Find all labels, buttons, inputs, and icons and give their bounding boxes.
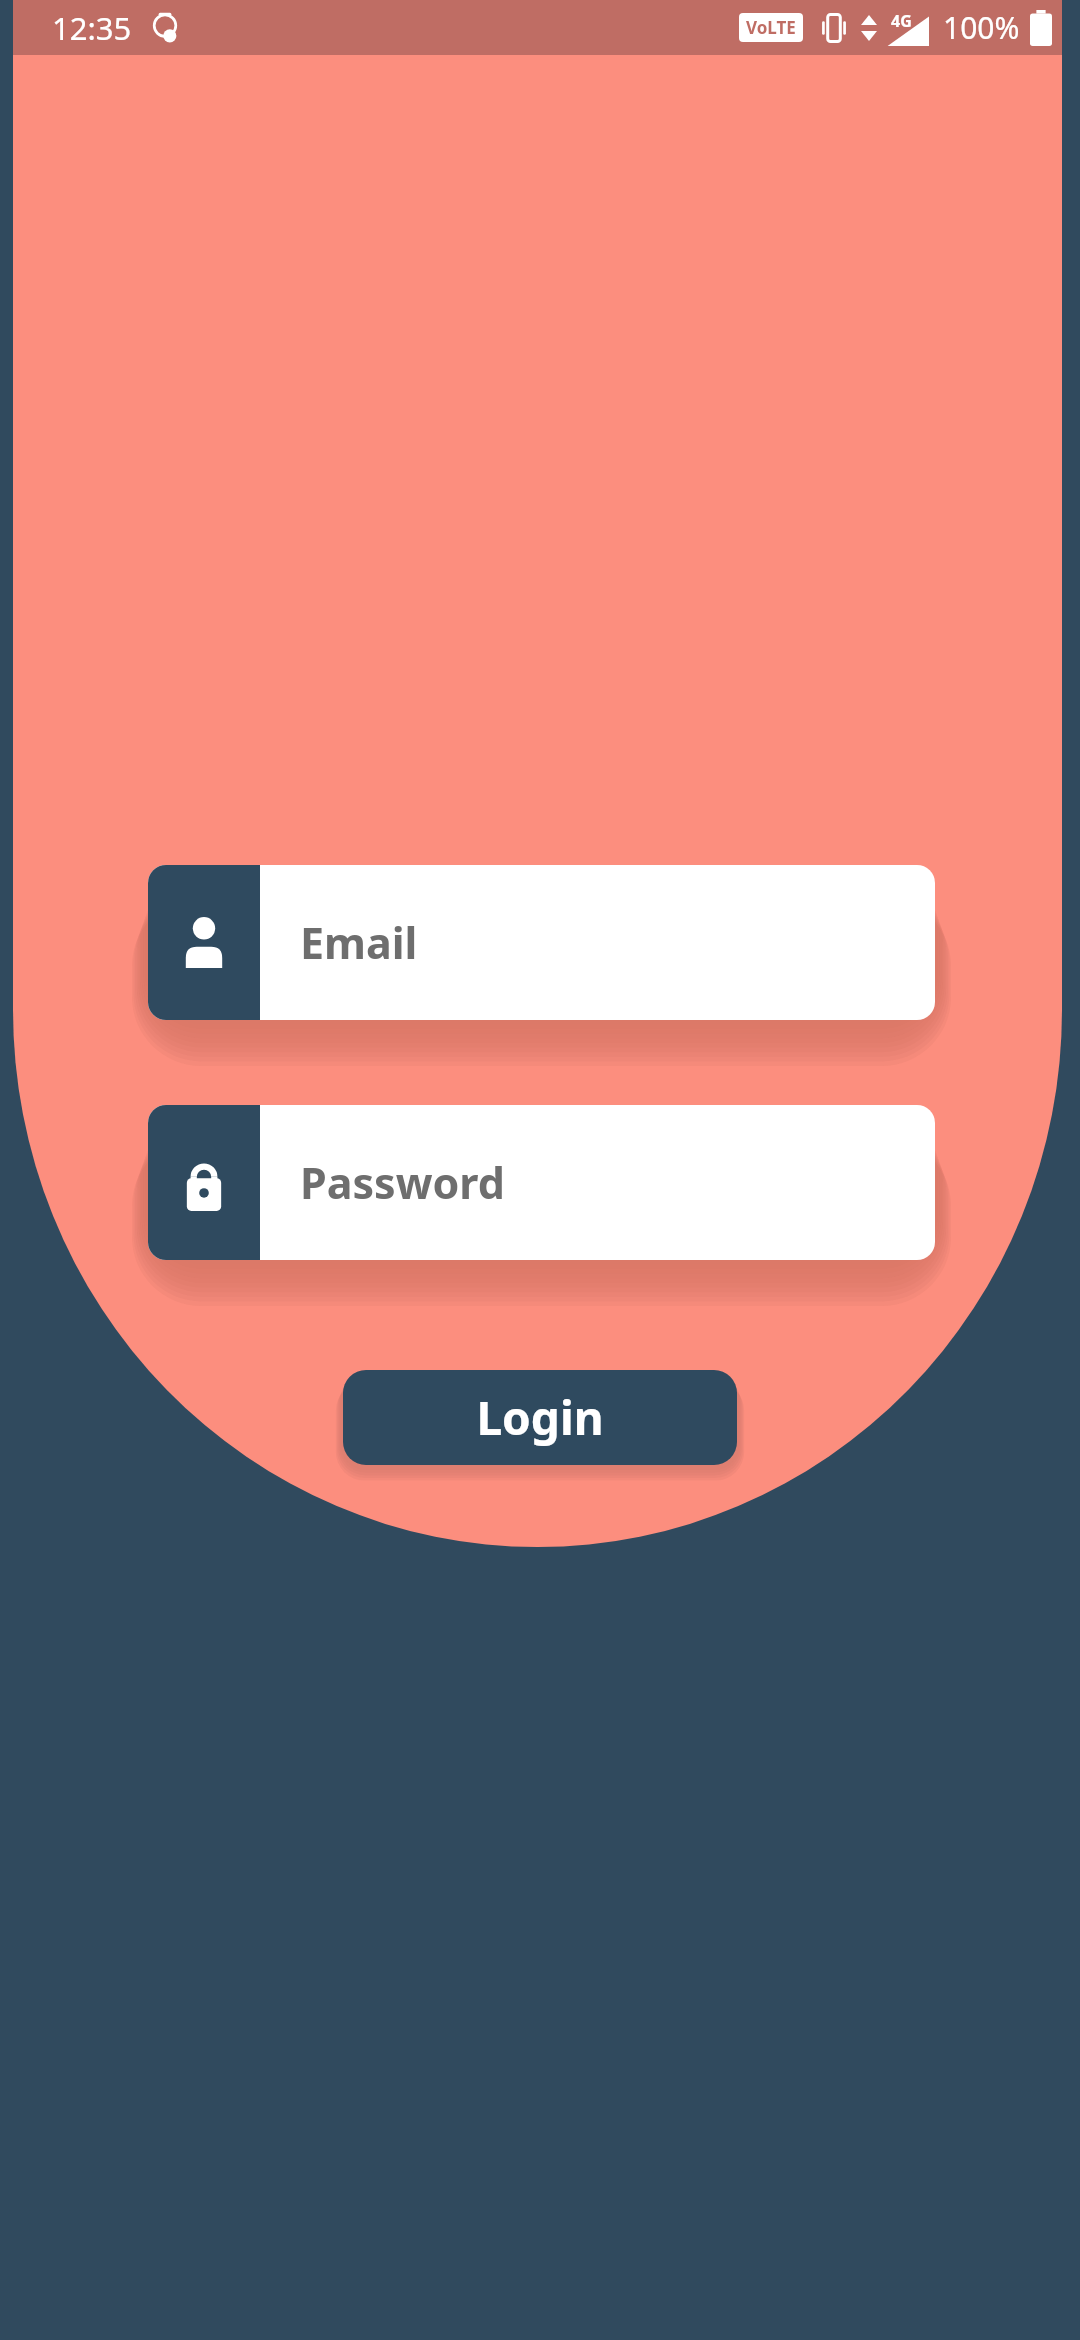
button[interactable]: Login xyxy=(343,1370,737,1465)
button[interactable]: Password xyxy=(148,1105,935,1260)
staticText: 4G xyxy=(891,10,912,32)
staticText: 12:35 xyxy=(52,7,132,49)
staticText: VoLTE xyxy=(746,16,796,39)
staticText: Login xyxy=(476,1386,604,1449)
button[interactable]: Email xyxy=(148,865,935,1020)
staticText: 100% xyxy=(943,7,1020,48)
staticText: Email xyxy=(300,913,418,972)
staticText: Password xyxy=(300,1153,505,1212)
